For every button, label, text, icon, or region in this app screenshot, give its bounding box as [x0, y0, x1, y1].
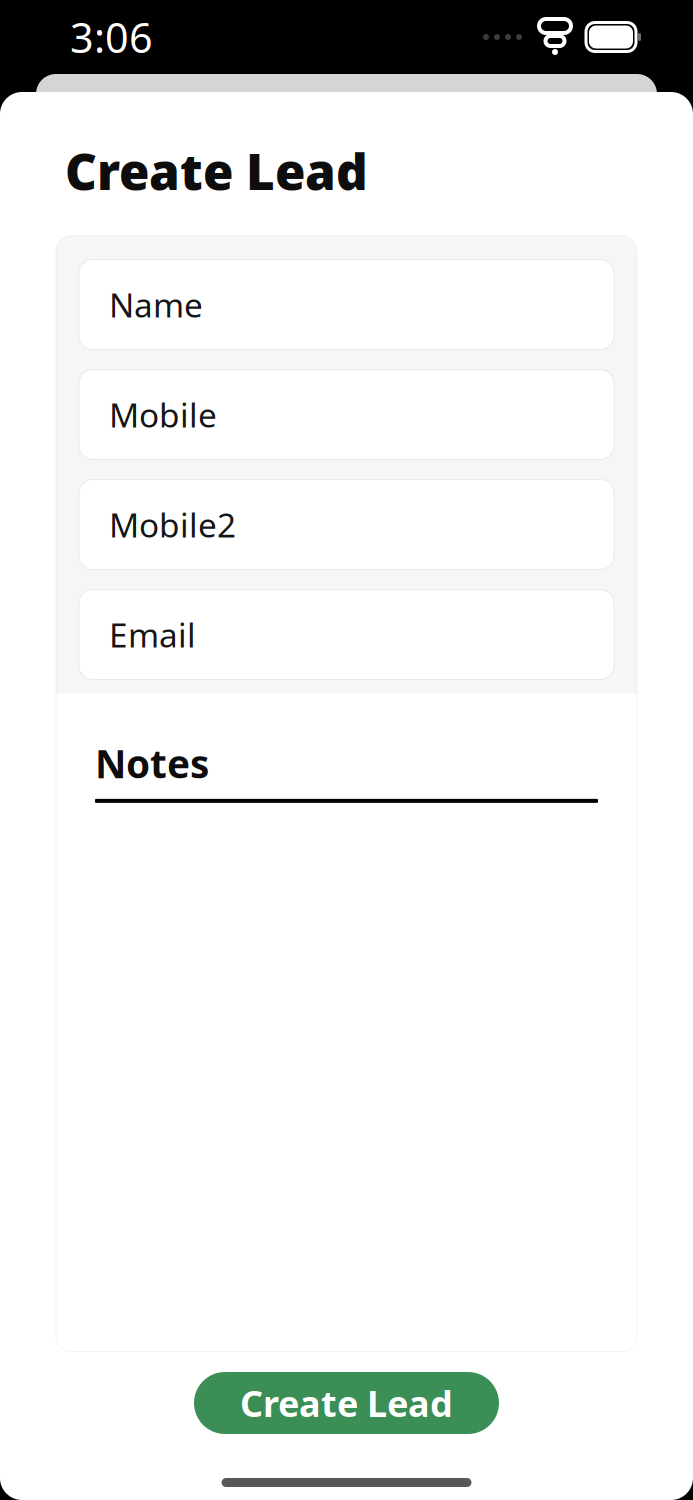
staticText: Create Lead — [65, 138, 368, 203]
button[interactable]: Mobile2 — [79, 479, 614, 569]
button[interactable]: Notes — [56, 693, 637, 1351]
staticText: Notes — [95, 737, 209, 789]
staticText: Email — [109, 612, 196, 657]
staticText: 3:06 — [70, 10, 153, 64]
staticText: Mobile2 — [109, 502, 236, 547]
button[interactable]: Create Lead — [194, 1372, 499, 1434]
button[interactable]: Email — [79, 589, 614, 679]
staticText: Mobile — [109, 392, 217, 437]
staticText: Name — [109, 282, 203, 327]
button[interactable]: Mobile — [79, 369, 614, 459]
staticText: Create Lead — [240, 1379, 453, 1427]
button[interactable]: Name — [79, 259, 614, 349]
